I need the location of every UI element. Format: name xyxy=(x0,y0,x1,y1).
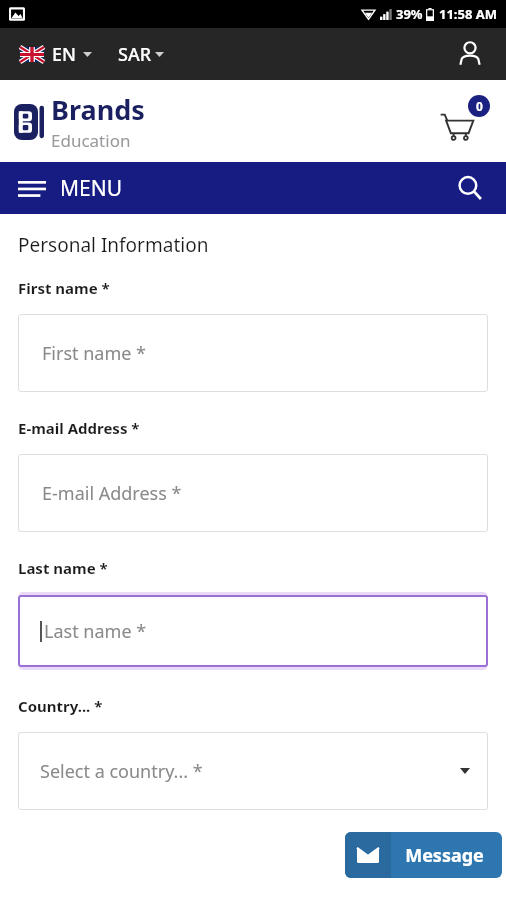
staticText: 39% xyxy=(396,5,423,23)
staticText: First name * xyxy=(42,341,147,366)
staticText: Education xyxy=(51,129,131,152)
staticText: E-mail Address * xyxy=(18,418,140,438)
button[interactable]: E-mail Address * xyxy=(18,454,488,532)
button[interactable]: EN xyxy=(18,36,94,73)
staticText: MENU xyxy=(60,174,123,203)
staticText: 11:58 AM xyxy=(439,5,498,23)
staticText: EN xyxy=(52,42,76,67)
staticText: First name * xyxy=(18,278,110,298)
staticText: Country... * xyxy=(18,696,103,716)
staticText: Message xyxy=(405,843,484,868)
staticText: Personal Information xyxy=(18,232,209,258)
button[interactable]: SAR xyxy=(116,36,166,73)
button[interactable]: Shopping cart, 0 items xyxy=(438,95,490,147)
staticText: 0 xyxy=(476,98,483,114)
staticText: Last name * xyxy=(18,558,108,578)
button[interactable]: First name * xyxy=(18,314,488,392)
button[interactable]: MENU xyxy=(14,168,127,209)
staticText: Select a country... * xyxy=(40,759,203,784)
button[interactable]: Search xyxy=(448,166,492,210)
button[interactable]: Message xyxy=(345,832,502,878)
button[interactable]: Brands xyxy=(14,91,145,152)
staticText: Brands xyxy=(51,91,145,128)
staticText: SAR xyxy=(118,42,152,67)
staticText: E-mail Address * xyxy=(42,481,182,506)
button[interactable]: Select a country... * xyxy=(18,732,488,810)
button[interactable]: Account xyxy=(450,34,490,74)
staticText: Last name * xyxy=(44,619,147,644)
